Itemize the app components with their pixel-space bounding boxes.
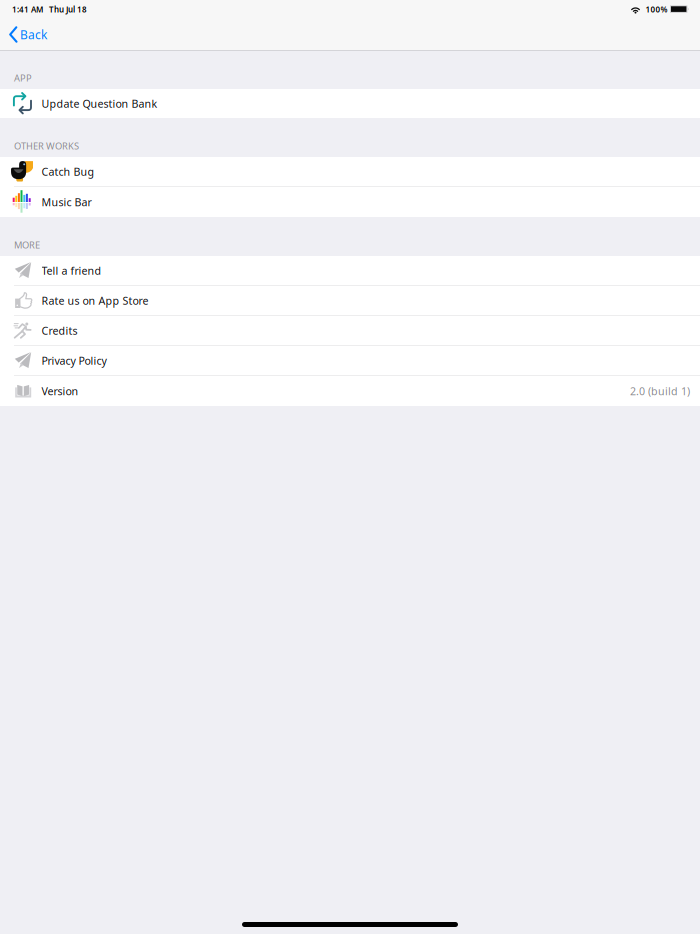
button[interactable]: Tell a friend xyxy=(0,256,700,286)
button[interactable]: Update Question Bank xyxy=(0,89,700,118)
staticText: Rate us on App Store xyxy=(41,293,148,308)
staticText: Privacy Policy xyxy=(41,353,106,368)
staticText: Credits xyxy=(41,323,77,338)
button[interactable]: Privacy Policy xyxy=(0,346,700,376)
staticText: APP xyxy=(14,72,32,84)
button[interactable]: Catch Bug xyxy=(0,157,700,187)
button[interactable]: Credits xyxy=(0,316,700,346)
button[interactable]: Music Bar xyxy=(0,187,700,217)
staticText: MORE xyxy=(14,239,40,251)
staticText: Version xyxy=(41,384,78,398)
staticText: Catch Bug xyxy=(41,164,94,179)
staticText: Music Bar xyxy=(41,195,91,209)
staticText: OTHER WORKS xyxy=(14,140,79,152)
button[interactable]: Version xyxy=(0,376,700,406)
button[interactable]: Rate us on App Store xyxy=(0,286,700,316)
staticText: Update Question Bank xyxy=(41,96,157,111)
button[interactable]: Back xyxy=(0,19,59,50)
staticText: Back xyxy=(20,26,47,42)
staticText: 2.0 (build 1) xyxy=(630,384,690,398)
staticText: Tell a friend xyxy=(41,263,101,278)
staticText: Thu Jul 18 xyxy=(43,4,87,15)
staticText: 1:41 AM xyxy=(12,4,43,15)
staticText: 100% xyxy=(641,4,667,15)
